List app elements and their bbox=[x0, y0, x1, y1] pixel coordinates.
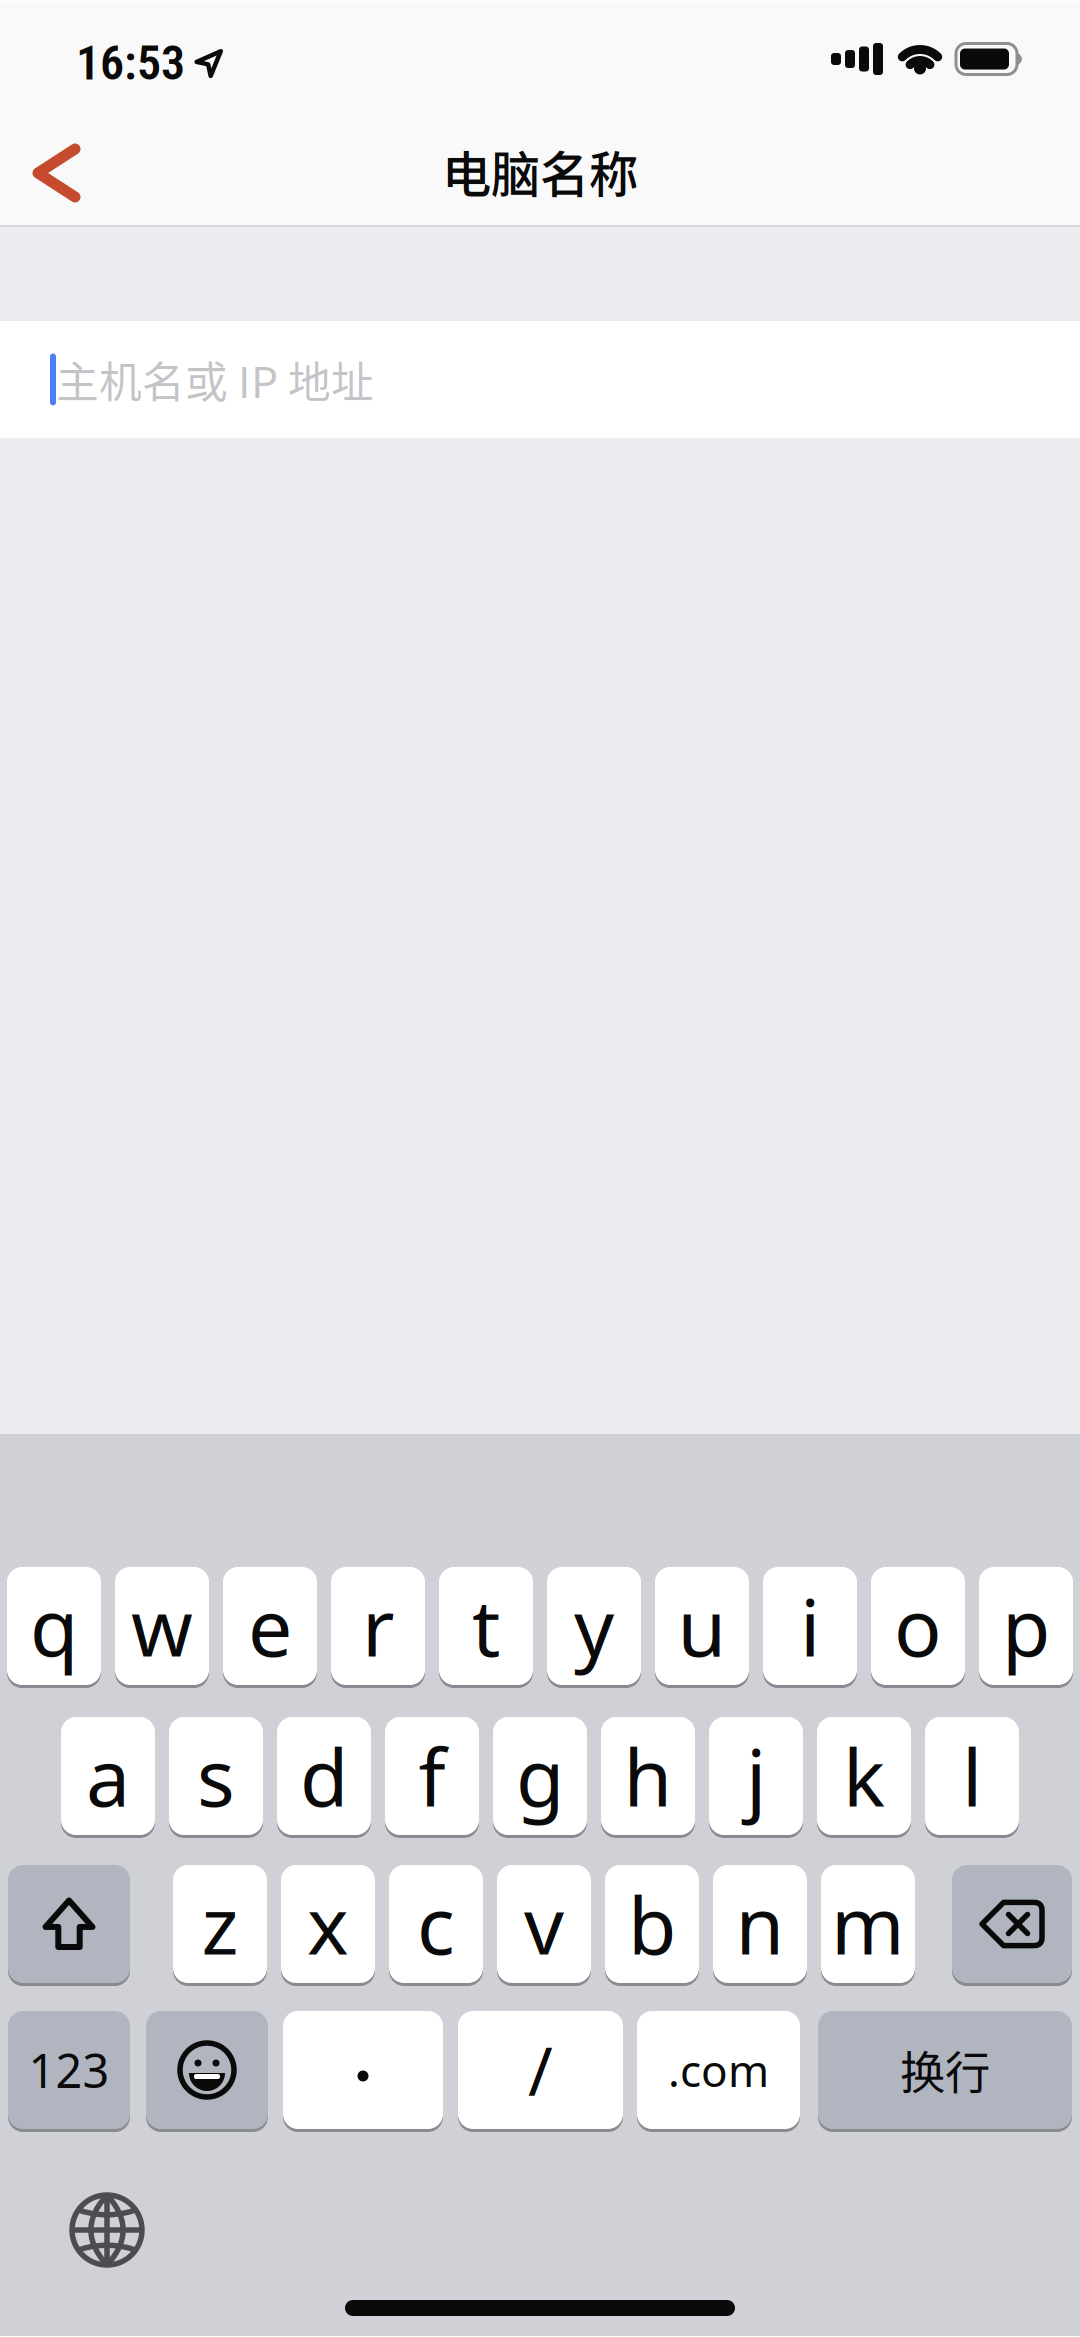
button[interactable]: .com bbox=[637, 2011, 800, 2129]
button[interactable]: r bbox=[331, 1567, 425, 1685]
staticText: v bbox=[524, 1872, 564, 1976]
staticText: j bbox=[746, 1724, 766, 1828]
button[interactable]: i bbox=[763, 1567, 857, 1685]
staticText: 123 bbox=[28, 2039, 109, 2101]
staticText: 电脑名称 bbox=[442, 135, 638, 207]
button[interactable]: b bbox=[605, 1865, 699, 1983]
button[interactable]: a bbox=[61, 1717, 155, 1835]
button[interactable]: j bbox=[709, 1717, 803, 1835]
staticText: r bbox=[362, 1574, 394, 1678]
button[interactable]: g bbox=[493, 1717, 587, 1835]
button[interactable]: s bbox=[169, 1717, 263, 1835]
staticText: u bbox=[677, 1574, 726, 1678]
button[interactable]: w bbox=[115, 1567, 209, 1685]
button[interactable]: x bbox=[281, 1865, 375, 1983]
button[interactable]: l bbox=[925, 1717, 1019, 1835]
button[interactable]: 123 bbox=[8, 2011, 130, 2129]
staticText: p bbox=[1002, 1574, 1050, 1678]
staticText: y bbox=[574, 1574, 614, 1678]
staticText: n bbox=[735, 1872, 784, 1976]
button[interactable]: 换行 bbox=[818, 2011, 1072, 2129]
button[interactable]: Delete bbox=[952, 1865, 1072, 1983]
button[interactable]: k bbox=[817, 1717, 911, 1835]
button[interactable]: z bbox=[173, 1865, 267, 1983]
button[interactable]: Next keyboard bbox=[72, 2195, 142, 2265]
button[interactable]: c bbox=[389, 1865, 483, 1983]
staticText: 16:53 bbox=[76, 35, 185, 91]
button[interactable]: h bbox=[601, 1717, 695, 1835]
staticText: h bbox=[623, 1724, 672, 1828]
staticText: t bbox=[472, 1574, 500, 1678]
button[interactable]: / bbox=[458, 2011, 623, 2129]
staticText: a bbox=[86, 1724, 130, 1828]
staticText: .com bbox=[668, 2041, 769, 2099]
button[interactable]: 主机名或 IP 地址 bbox=[0, 321, 1080, 438]
staticText: 换行 bbox=[900, 2037, 990, 2103]
staticText: w bbox=[131, 1574, 193, 1678]
staticText: e bbox=[248, 1574, 292, 1678]
button[interactable]: Back bbox=[0, 129, 75, 217]
button[interactable]: y bbox=[547, 1567, 641, 1685]
staticText: d bbox=[300, 1724, 348, 1828]
staticText: c bbox=[417, 1872, 455, 1976]
button[interactable]: o bbox=[871, 1567, 965, 1685]
staticText: f bbox=[418, 1724, 445, 1828]
staticText: b bbox=[628, 1872, 676, 1976]
staticText: / bbox=[528, 2026, 553, 2114]
staticText: l bbox=[962, 1724, 982, 1828]
button[interactable]: q bbox=[7, 1567, 101, 1685]
button[interactable]: Emoji bbox=[146, 2011, 268, 2129]
button[interactable]: d bbox=[277, 1717, 371, 1835]
button[interactable]: Shift bbox=[8, 1865, 130, 1983]
staticText: q bbox=[30, 1574, 78, 1678]
button[interactable]: f bbox=[385, 1717, 479, 1835]
staticText: s bbox=[197, 1724, 235, 1828]
button[interactable]: t bbox=[439, 1567, 533, 1685]
staticText: 主机名或 IP 地址 bbox=[56, 349, 374, 410]
staticText: k bbox=[843, 1724, 885, 1828]
button[interactable]: u bbox=[655, 1567, 749, 1685]
button[interactable]: m bbox=[821, 1865, 915, 1983]
button[interactable]: p bbox=[979, 1567, 1073, 1685]
button[interactable]: . bbox=[283, 2011, 443, 2129]
button[interactable]: e bbox=[223, 1567, 317, 1685]
staticText: i bbox=[800, 1574, 820, 1678]
staticText: x bbox=[307, 1872, 349, 1976]
staticText: z bbox=[201, 1872, 238, 1976]
staticText: o bbox=[894, 1574, 942, 1678]
button[interactable]: v bbox=[497, 1865, 591, 1983]
staticText: g bbox=[516, 1724, 564, 1828]
staticText: m bbox=[831, 1872, 905, 1976]
button[interactable]: n bbox=[713, 1865, 807, 1983]
